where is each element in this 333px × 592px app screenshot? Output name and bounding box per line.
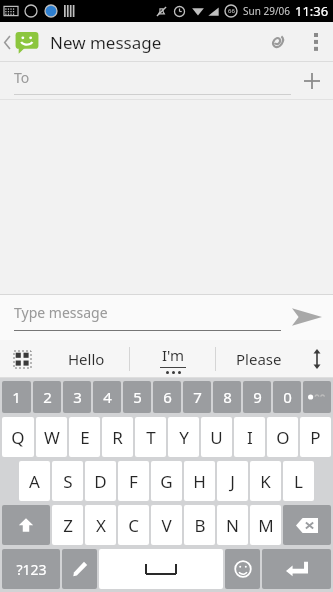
staticText: New message	[50, 31, 162, 54]
button[interactable]: V	[151, 505, 182, 545]
button[interactable]: 1	[2, 381, 31, 413]
staticText: Y	[179, 426, 189, 449]
button[interactable]: 8	[213, 381, 241, 413]
button[interactable]: 3	[63, 381, 91, 413]
button[interactable]: K	[250, 461, 281, 501]
button[interactable]: More symbols	[303, 381, 331, 413]
button[interactable]: Q	[2, 417, 34, 457]
button[interactable]: M	[250, 505, 281, 545]
staticText: P	[310, 426, 321, 449]
button[interactable]: More options	[299, 25, 333, 59]
button[interactable]: Z	[52, 505, 83, 545]
staticText: 3	[73, 387, 82, 407]
button[interactable]: 4	[93, 381, 121, 413]
staticText: 66	[228, 7, 235, 15]
staticText: C	[128, 514, 139, 537]
button[interactable]: D	[85, 461, 116, 501]
button[interactable]: Type message	[14, 303, 281, 331]
staticText: K	[260, 470, 271, 493]
button[interactable]: Handwriting	[62, 549, 97, 589]
button[interactable]: E	[69, 417, 100, 457]
button[interactable]: Space	[99, 549, 223, 589]
button[interactable]: Send	[281, 294, 333, 340]
staticText: Sun 29/06	[243, 4, 291, 18]
button[interactable]: Expand suggestions	[301, 340, 333, 378]
staticText: M	[258, 514, 274, 537]
button[interactable]: U	[201, 417, 232, 457]
staticText: ?123	[16, 560, 47, 579]
button[interactable]: 2	[33, 381, 61, 413]
button[interactable]: 9	[243, 381, 271, 413]
button[interactable]: 0	[273, 381, 301, 413]
button[interactable]: Add recipient	[291, 62, 333, 100]
button[interactable]: B	[184, 505, 215, 545]
staticText: 4	[103, 387, 112, 407]
button[interactable]: X	[85, 505, 116, 545]
button[interactable]: J	[217, 461, 248, 501]
button[interactable]: I	[234, 417, 265, 457]
staticText: 5	[133, 387, 142, 407]
button[interactable]: T	[135, 417, 166, 457]
staticText: 9	[253, 387, 262, 407]
staticText: G	[160, 470, 173, 493]
button[interactable]: G	[151, 461, 182, 501]
button[interactable]: C	[118, 505, 149, 545]
button[interactable]: P	[300, 417, 331, 457]
button[interactable]: To	[14, 68, 291, 95]
staticText: Type message	[14, 303, 108, 322]
button[interactable]: H	[184, 461, 215, 501]
button[interactable]: Keyboard options	[0, 340, 44, 378]
button[interactable]: Shift	[2, 505, 50, 545]
button[interactable]: Please	[216, 340, 301, 378]
button[interactable]: Enter	[262, 549, 331, 589]
button[interactable]: O	[267, 417, 298, 457]
staticText: X	[96, 514, 106, 537]
button[interactable]: Attach	[255, 22, 299, 62]
button[interactable]: 5	[123, 381, 151, 413]
button[interactable]: L	[283, 461, 314, 501]
staticText: 8	[223, 387, 232, 407]
staticText: B	[194, 514, 206, 537]
button[interactable]: Hello	[44, 340, 129, 378]
staticText: D	[94, 470, 107, 493]
staticText: Q	[11, 426, 25, 449]
staticText: V	[161, 514, 172, 537]
staticText: 7	[193, 387, 202, 407]
staticText: I'm	[162, 345, 185, 365]
staticText: H	[193, 470, 206, 493]
staticText: J	[230, 470, 235, 493]
button[interactable]: I'm	[130, 340, 215, 378]
staticText: 2	[43, 387, 52, 407]
staticText: F	[129, 470, 138, 493]
staticText: N	[226, 514, 239, 537]
button[interactable]: 7	[183, 381, 211, 413]
staticText: O	[276, 426, 290, 449]
staticText: 6	[163, 387, 172, 407]
staticText: R	[112, 426, 123, 449]
staticText: A	[29, 470, 40, 493]
staticText: 11:36	[295, 2, 329, 20]
staticText: I	[247, 426, 253, 449]
staticText: 0	[283, 387, 292, 407]
button[interactable]: New message	[0, 29, 170, 55]
staticText: Z	[63, 514, 73, 537]
staticText: To	[14, 68, 30, 87]
button[interactable]: Emoji	[225, 549, 260, 589]
button[interactable]: Backspace	[283, 505, 331, 545]
button[interactable]: Y	[168, 417, 199, 457]
staticText: U	[210, 426, 223, 449]
staticText: W	[44, 426, 60, 449]
button[interactable]: F	[118, 461, 149, 501]
button[interactable]: A	[19, 461, 50, 501]
staticText: 1	[12, 387, 21, 407]
button[interactable]: S	[52, 461, 83, 501]
staticText: L	[294, 470, 303, 493]
button[interactable]: R	[102, 417, 133, 457]
staticText: T	[146, 426, 156, 449]
staticText: Please	[236, 349, 282, 369]
button[interactable]: N	[217, 505, 248, 545]
button[interactable]: W	[36, 417, 67, 457]
button[interactable]: ?123	[2, 549, 60, 589]
button[interactable]: 6	[153, 381, 181, 413]
staticText: S	[63, 470, 73, 493]
